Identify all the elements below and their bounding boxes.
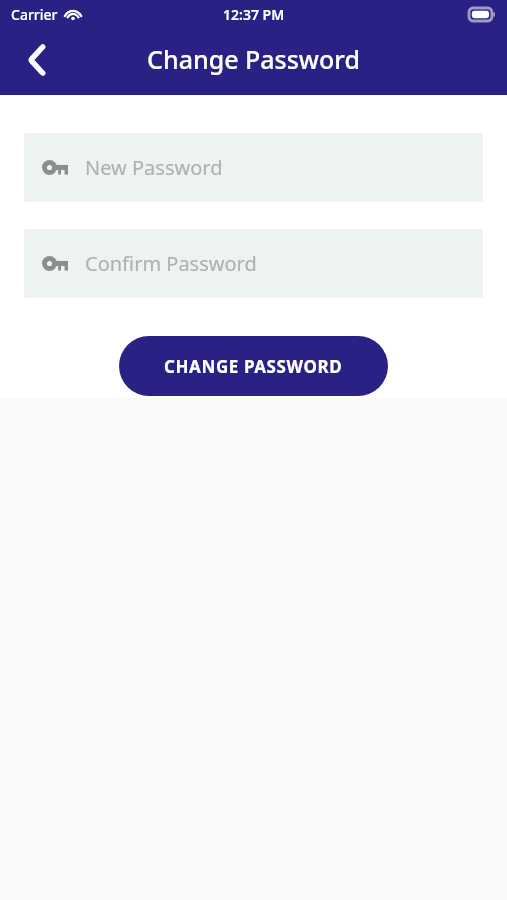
staticText: New Password <box>85 154 223 181</box>
staticText: 12:37 PM <box>223 5 285 24</box>
button[interactable]: CHANGE PASSWORD <box>119 336 388 396</box>
staticText: CHANGE PASSWORD <box>164 355 343 378</box>
button[interactable]: Confirm Password <box>24 229 483 298</box>
staticText: Change Password <box>0 42 507 76</box>
button[interactable]: New Password <box>24 133 483 202</box>
staticText: Confirm Password <box>85 250 257 277</box>
button[interactable]: Back <box>12 35 62 85</box>
staticText: Carrier <box>11 5 58 24</box>
